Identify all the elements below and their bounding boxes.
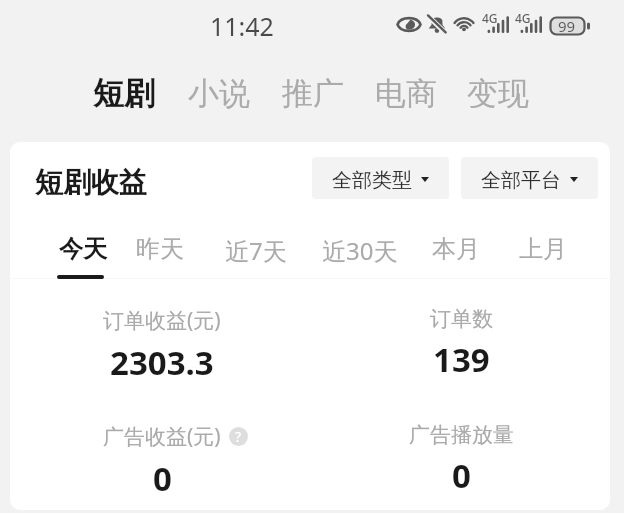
staticText: 0	[452, 453, 471, 498]
staticText: ?	[235, 427, 242, 446]
staticText: 本月	[432, 234, 480, 264]
staticText: 推广	[282, 74, 344, 113]
button[interactable]: 短剧	[82, 68, 166, 118]
button[interactable]: Help	[229, 427, 248, 446]
button[interactable]: 电商	[364, 68, 448, 118]
staticText: 变现	[467, 74, 529, 113]
staticText: 今天	[59, 234, 107, 264]
other: Notifications silenced	[428, 14, 446, 34]
other: Eye care mode on	[396, 16, 422, 33]
button[interactable]: 广告播放量	[313, 422, 609, 506]
button[interactable]: 今天	[38, 234, 128, 288]
staticText: 近7天	[225, 234, 287, 267]
button[interactable]: 变现	[456, 68, 540, 118]
staticText: 4G	[482, 10, 498, 26]
other: Battery 99 percent	[549, 16, 591, 36]
staticText: 4G	[515, 10, 531, 26]
staticText: 短剧收益	[35, 165, 147, 200]
staticText: 广告播放量	[409, 422, 514, 448]
staticText: 订单收益(元)	[103, 306, 221, 335]
button[interactable]: 全部类型	[312, 157, 449, 199]
button[interactable]: 上月	[498, 234, 588, 288]
staticText: 全部平台	[481, 168, 561, 193]
staticText: 11:42	[210, 9, 274, 43]
other: SIM 1 signal 4G full	[482, 13, 509, 33]
staticText: 139	[433, 337, 490, 382]
button[interactable]: 近30天	[315, 234, 405, 288]
button[interactable]: 本月	[411, 234, 501, 288]
button[interactable]: 近7天	[211, 234, 301, 288]
staticText: 订单数	[430, 306, 493, 332]
other: Wi-Fi connected	[452, 15, 476, 32]
button[interactable]: 推广	[271, 68, 355, 118]
staticText: 短剧	[93, 74, 155, 113]
staticText: 99	[558, 16, 576, 36]
staticText: 2303.3	[110, 340, 214, 385]
button[interactable]: 全部平台	[461, 157, 598, 199]
staticText: 小说	[188, 74, 250, 113]
button[interactable]: 订单数	[313, 306, 609, 390]
staticText: 近30天	[322, 234, 398, 267]
staticText: 昨天	[136, 234, 184, 264]
staticText: 广告收益(元)	[103, 422, 221, 451]
button[interactable]: 昨天	[115, 234, 205, 288]
button[interactable]: 订单收益(元)	[14, 306, 310, 390]
other: SIM 2 signal 4G full	[515, 13, 542, 33]
staticText: 上月	[519, 234, 567, 264]
staticText: 0	[153, 456, 172, 501]
staticText: 电商	[375, 74, 437, 113]
staticText: 全部类型	[332, 168, 412, 193]
button[interactable]: 广告收益(元)	[14, 422, 310, 506]
button[interactable]: 小说	[177, 68, 261, 118]
